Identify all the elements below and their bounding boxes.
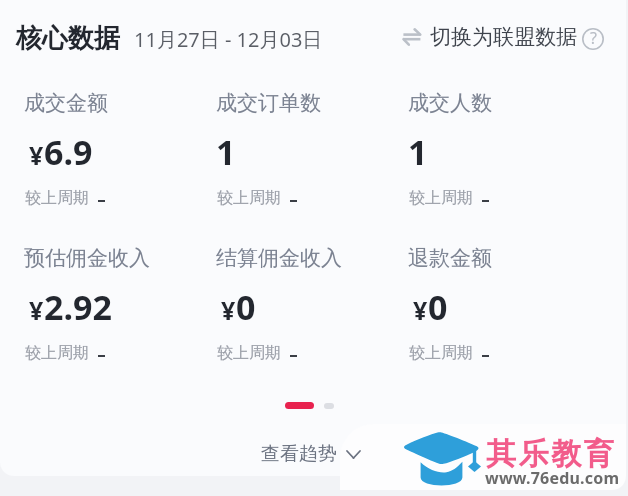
- staticText: 预估佣金收入: [24, 245, 150, 271]
- staticText: 0: [236, 284, 256, 330]
- button[interactable]: 查看趋势: [261, 442, 360, 466]
- staticText: ¥: [29, 293, 44, 327]
- staticText: 较上周期: [217, 188, 281, 208]
- staticText: ¥: [413, 293, 428, 327]
- staticText: 1: [408, 129, 428, 175]
- staticText: 1: [216, 129, 236, 175]
- staticText: 较上周期: [25, 343, 89, 363]
- staticText: ?: [590, 27, 597, 49]
- button[interactable]: 帮助说明: [582, 28, 604, 50]
- button[interactable]: 切换为联盟数据: [403, 24, 604, 50]
- staticText: 成交人数: [408, 90, 492, 116]
- staticText: ¥: [29, 138, 44, 172]
- other: 切换为联盟数据: [403, 29, 421, 45]
- staticText: www.76edu.com: [485, 467, 620, 489]
- staticText: 退款金额: [408, 245, 492, 271]
- staticText: 2.92: [44, 284, 112, 330]
- staticText: 其乐教育: [486, 435, 617, 473]
- staticText: 较上周期: [217, 343, 281, 363]
- staticText: 较上周期: [25, 188, 89, 208]
- other: 展开: [347, 451, 360, 458]
- staticText: 较上周期: [409, 343, 473, 363]
- staticText: 0: [428, 284, 448, 330]
- staticText: 结算佣金收入: [216, 245, 342, 271]
- staticText: 查看趋势: [261, 442, 337, 466]
- staticText: 较上周期: [409, 188, 473, 208]
- staticText: 成交金额: [24, 90, 108, 116]
- staticText: 成交订单数: [216, 90, 321, 116]
- staticText: 切换为联盟数据: [430, 24, 577, 50]
- staticText: 11月27日 - 12月03日: [134, 26, 323, 53]
- staticText: 核心数据: [16, 22, 120, 55]
- staticText: 6.9: [44, 129, 93, 175]
- staticText: ¥: [221, 293, 236, 327]
